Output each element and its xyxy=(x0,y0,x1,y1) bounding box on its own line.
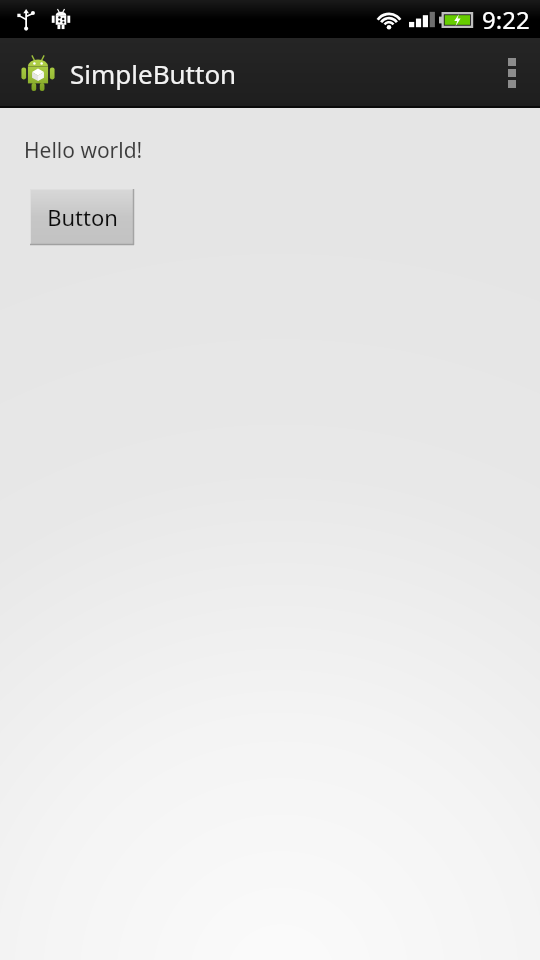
staticText: 9:22 xyxy=(482,3,530,36)
staticText: SimpleButton xyxy=(70,56,237,91)
button[interactable]: More options xyxy=(484,38,540,108)
button[interactable]: Button xyxy=(30,189,134,245)
staticText: Button xyxy=(47,202,118,232)
staticText: Hello world! xyxy=(24,136,143,165)
